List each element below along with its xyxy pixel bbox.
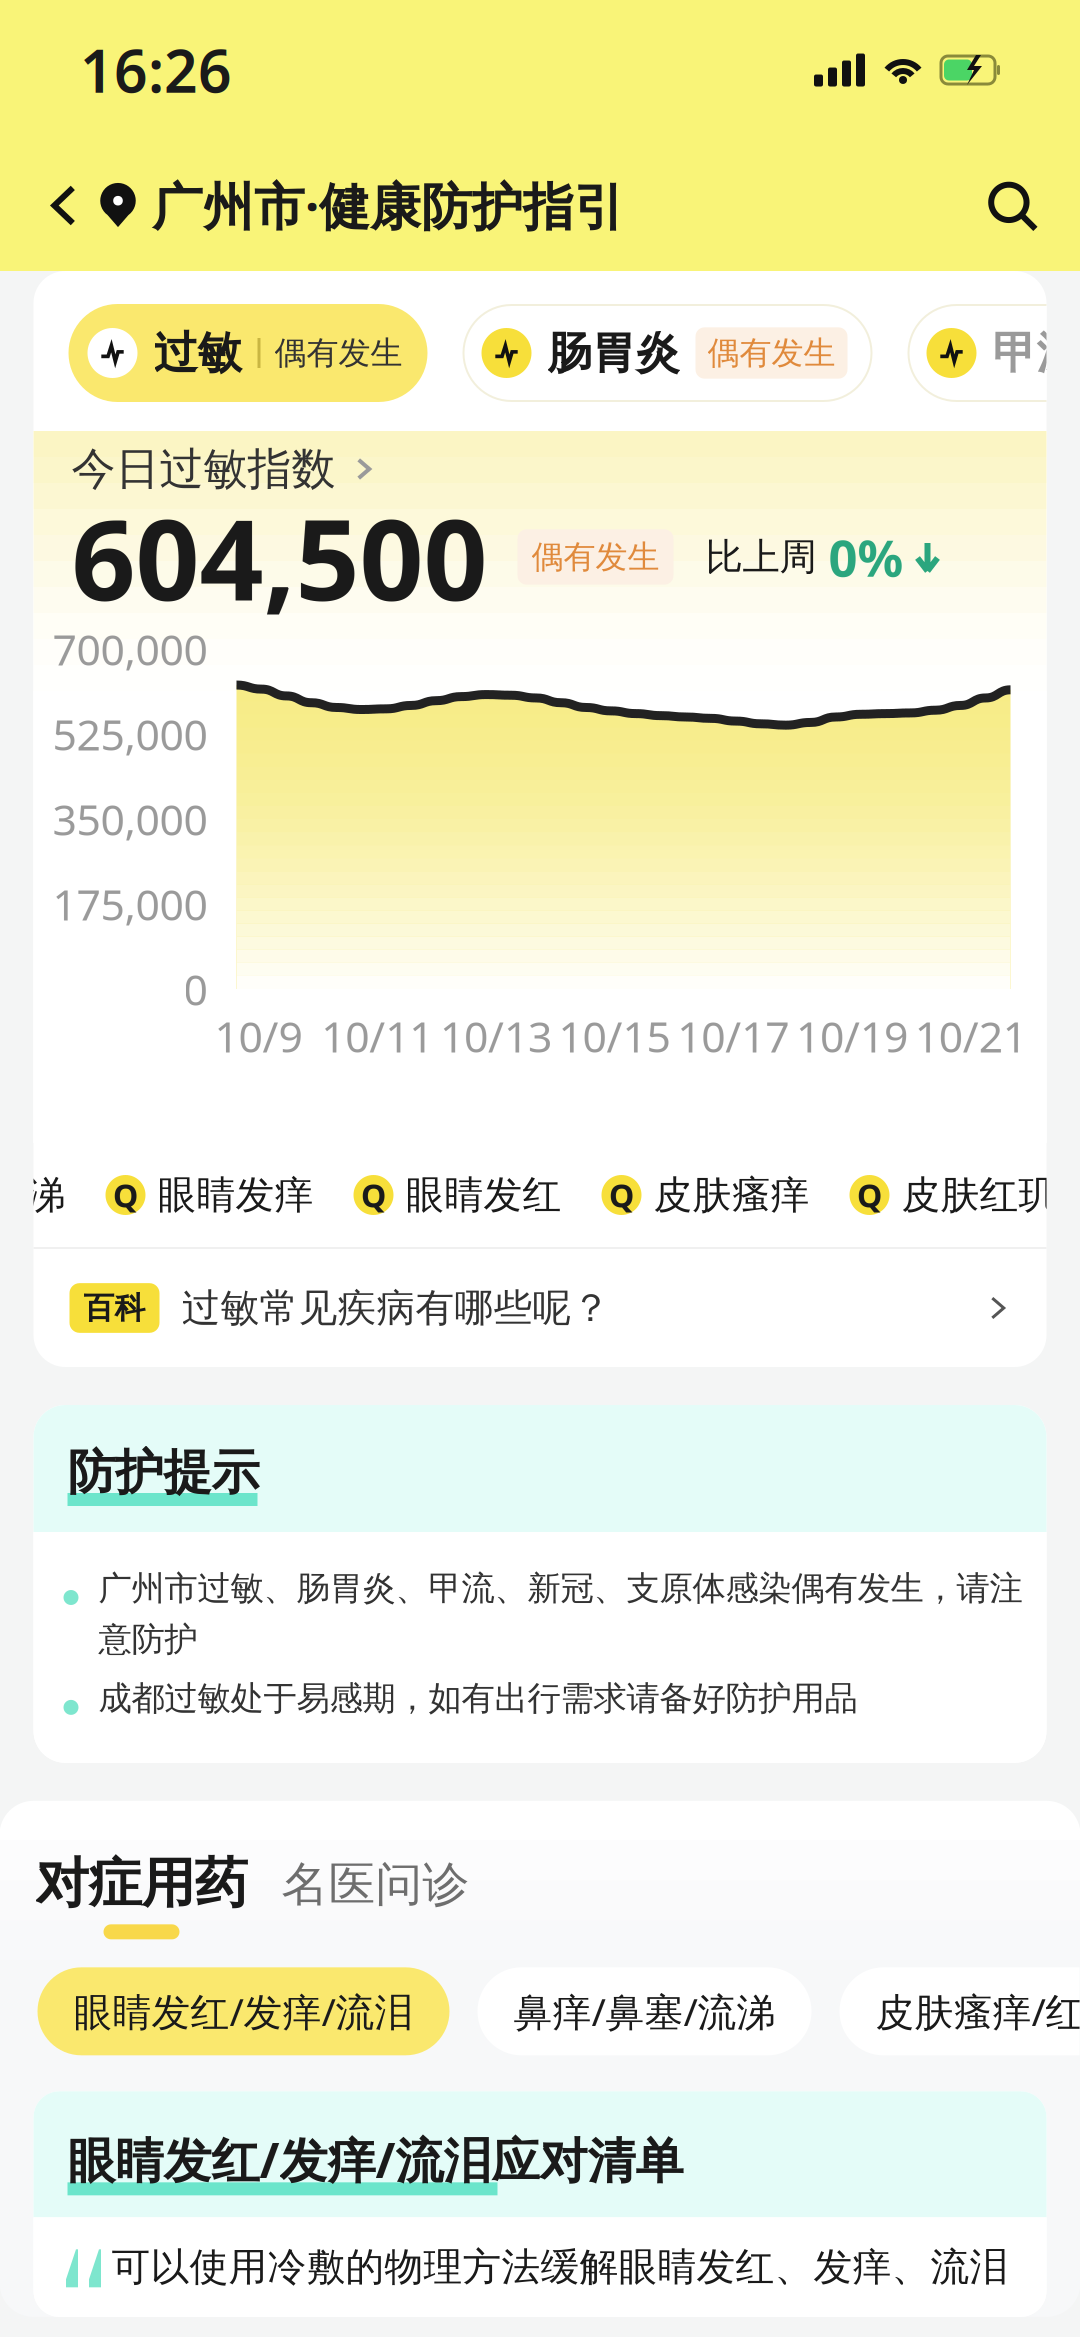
staticText: 350,000	[52, 791, 207, 847]
staticText: 偶有发生	[707, 333, 835, 373]
staticText: 10/9	[214, 1008, 302, 1064]
staticText: 0	[183, 961, 207, 1017]
button[interactable]: 皮肤瘙痒/红玑	[839, 1967, 1080, 2055]
staticText: 偶有发生	[274, 333, 402, 373]
button[interactable]: 过敏	[69, 305, 426, 401]
button[interactable]: 名医问诊	[281, 1851, 469, 1908]
staticText: Q	[857, 1174, 882, 1216]
staticText: 成都过敏处于易感期，如有出行需求请备好防护用品	[98, 1678, 857, 1719]
staticText: 眼睛发红	[405, 1171, 561, 1219]
staticText: 604,500	[71, 483, 487, 631]
staticText: 百科	[83, 1289, 145, 1327]
staticText: 10/21	[915, 1008, 1027, 1064]
staticText: 广州市·健康防护指引	[152, 172, 625, 239]
button[interactable]: 甲流	[908, 305, 1080, 401]
staticText: 10/13	[440, 1008, 552, 1064]
staticText: 肠胃炎	[547, 326, 679, 380]
staticText: 过敏常见疾病有哪些呢？	[181, 1284, 610, 1332]
staticText: 10/19	[796, 1008, 908, 1064]
button[interactable]: Q	[353, 1171, 561, 1219]
staticText: 16:26	[80, 31, 232, 109]
button[interactable]: Search	[986, 179, 1038, 231]
staticText: 700,000	[52, 621, 207, 677]
button[interactable]: Back	[42, 183, 94, 227]
staticText: 0%	[828, 523, 903, 591]
staticText: 比上周	[705, 534, 816, 580]
staticText: 皮肤瘙痒	[653, 1171, 809, 1219]
staticText: 525,000	[52, 706, 207, 762]
button[interactable]: 鼻痒/鼻塞/流涕	[477, 1967, 811, 2055]
staticText: 眼睛发红/发痒/流泪应对清单	[67, 2128, 683, 2191]
staticText: 今日过敏指数	[71, 442, 335, 496]
staticText: 10/15	[559, 1008, 671, 1064]
button[interactable]: 今日过敏指数	[71, 439, 375, 499]
button[interactable]: 对症用药	[35, 1851, 247, 1939]
staticText: 眼睛发痒	[157, 1171, 313, 1219]
staticText: 对症用药	[35, 1851, 247, 1916]
staticText: 名医问诊	[281, 1856, 469, 1913]
button[interactable]: 百科	[33, 1249, 1046, 1367]
staticText: Q	[609, 1174, 634, 1216]
staticText: 偶有发生	[531, 537, 659, 577]
staticText: 鼻痒/鼻塞/流涕	[513, 1986, 775, 2037]
staticText: 防护提示	[67, 1443, 259, 1502]
staticText: 广州市过敏、肠胃炎、甲流、新冠、支原体感染偶有发生，请注意防护	[98, 1568, 1022, 1660]
button[interactable]: 眼睛发红/发痒/流泪	[37, 1967, 449, 2055]
staticText: 流涕	[0, 1171, 65, 1219]
button[interactable]: Q	[849, 1171, 1057, 1219]
staticText: 眼睛发红/发痒/流泪	[73, 1986, 413, 2037]
button[interactable]: 肠胃炎	[463, 305, 871, 401]
staticText: 过敏	[153, 326, 241, 380]
staticText: 10/11	[321, 1008, 433, 1064]
staticText: 皮肤红玑	[901, 1171, 1057, 1219]
button[interactable]: Q	[105, 1171, 313, 1219]
staticText: 可以使用冷敷的物理方法缓解眼睛发红、发痒、流泪	[111, 2243, 1008, 2291]
staticText: Q	[361, 1174, 386, 1216]
staticText: 10/17	[677, 1008, 789, 1064]
staticText: 甲流	[992, 326, 1080, 380]
button[interactable]: Q	[601, 1171, 809, 1219]
staticText: Q	[113, 1174, 138, 1216]
staticText: 175,000	[52, 876, 207, 932]
staticText: 皮肤瘙痒/红玑	[875, 1986, 1080, 2037]
